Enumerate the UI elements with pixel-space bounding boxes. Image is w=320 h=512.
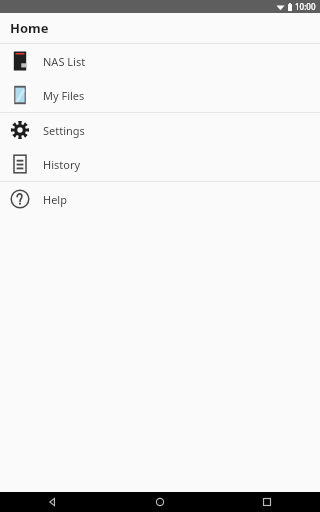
button[interactable]: Help — [0, 182, 320, 216]
button[interactable]: History — [0, 147, 320, 181]
staticText: 10:00 — [295, 1, 316, 12]
staticText: History — [43, 157, 81, 172]
button[interactable]: Recents — [213, 492, 320, 512]
button[interactable]: NAS List — [0, 44, 320, 78]
staticText: Settings — [43, 123, 85, 138]
staticText: NAS List — [43, 54, 86, 69]
button[interactable]: Back — [0, 492, 106, 512]
button[interactable]: Home — [106, 492, 213, 512]
staticText: Home — [10, 19, 49, 37]
button[interactable]: My Files — [0, 78, 320, 112]
staticText: My Files — [43, 88, 85, 103]
button[interactable]: Settings — [0, 113, 320, 147]
staticText: Help — [43, 192, 67, 207]
